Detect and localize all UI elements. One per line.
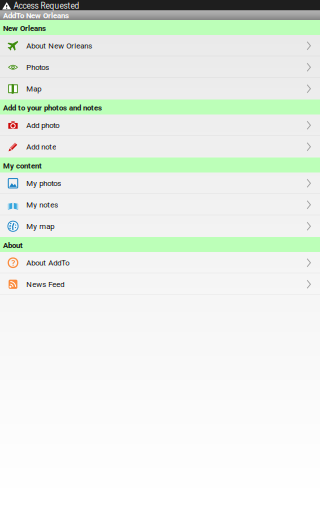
staticText: About AddTo xyxy=(26,258,69,267)
staticText: My photos xyxy=(26,179,61,188)
staticText: AddTo New Orleans xyxy=(3,11,69,20)
button[interactable]: My notes xyxy=(0,194,320,215)
staticText: News Feed xyxy=(26,280,64,289)
button[interactable]: About New Orleans xyxy=(0,35,320,56)
staticText: My notes xyxy=(26,200,58,209)
staticText: Map xyxy=(26,84,41,93)
staticText: My content xyxy=(3,161,42,170)
button[interactable]: Add photo xyxy=(0,114,320,136)
button[interactable]: Add note xyxy=(0,136,320,157)
staticText: Add photo xyxy=(26,121,59,130)
staticText: About xyxy=(3,241,23,250)
button[interactable]: About AddTo xyxy=(0,252,320,273)
staticText: Add note xyxy=(26,142,56,151)
staticText: New Orleans xyxy=(3,24,46,33)
button[interactable]: Photos xyxy=(0,56,320,78)
staticText: Add to your photos and notes xyxy=(3,103,102,112)
staticText: About New Orleans xyxy=(26,41,92,50)
button[interactable]: News Feed xyxy=(0,273,320,295)
staticText: Access Requested xyxy=(14,1,80,11)
button[interactable]: My photos xyxy=(0,172,320,194)
staticText: My map xyxy=(26,222,54,231)
staticText: Photos xyxy=(26,63,49,72)
button[interactable]: My map xyxy=(0,215,320,237)
button[interactable]: Map xyxy=(0,78,320,99)
